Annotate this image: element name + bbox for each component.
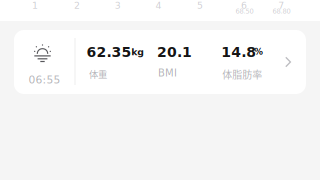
staticText: 6 (241, 0, 247, 11)
staticText: 62.35 (86, 44, 131, 60)
staticText: kg (131, 47, 144, 57)
staticText: 14.8 (221, 44, 256, 60)
staticText: 7 (278, 0, 284, 11)
staticText: 体重 (89, 67, 107, 81)
staticText: 68.50 (235, 7, 253, 15)
staticText: 2 (74, 0, 80, 11)
staticText: % (254, 47, 263, 57)
staticText: 5 (197, 0, 203, 11)
staticText: 体脂肪率 (222, 67, 262, 81)
button[interactable]: 06:55 (14, 30, 306, 94)
staticText: 20.1 (157, 44, 192, 60)
staticText: 4 (156, 0, 162, 11)
staticText: 1 (32, 0, 38, 11)
staticText: 3 (115, 0, 121, 11)
staticText: 06:55 (28, 73, 60, 86)
staticText: 68.80 (272, 7, 290, 15)
staticText: BMI (158, 67, 177, 79)
